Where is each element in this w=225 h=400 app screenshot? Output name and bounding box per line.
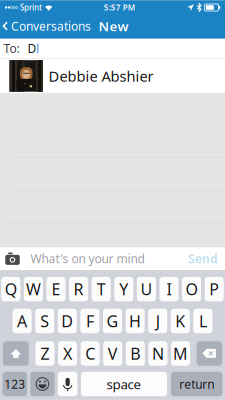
staticText: K [175,310,185,332]
staticText: M [173,343,188,364]
staticText: return [179,376,214,392]
staticText: Q [5,278,17,300]
button[interactable]: A [13,309,32,333]
button[interactable]: H [126,309,145,333]
staticText: U [140,278,152,300]
button[interactable]: S [35,309,54,333]
button[interactable]: Dictation [58,372,77,396]
staticText: N [152,343,164,364]
staticText: Send [188,251,218,267]
staticText: S [40,310,49,332]
button[interactable]: Camera [1,252,24,266]
staticText: 123 [4,376,25,392]
staticText: space [106,375,141,393]
staticText: Conversations [11,18,91,34]
staticText: P [209,278,219,300]
staticText: B [130,343,140,364]
button[interactable]: P [205,277,224,301]
button[interactable]: R [69,277,88,301]
staticText: C [85,343,95,364]
button[interactable]: Delete [197,341,222,366]
staticText: G [106,310,118,332]
staticText: I [166,278,171,300]
button[interactable]: Conversations [0,14,95,38]
staticText: E [51,278,60,300]
button[interactable]: Debbie Abshier [0,59,225,94]
button[interactable]: J [148,309,167,333]
staticText: L [199,310,207,332]
staticText: Sprint [20,2,42,13]
button[interactable]: B [126,341,145,366]
staticText: R [74,278,84,300]
button[interactable]: N [148,341,167,366]
staticText: 5:57 PM [104,2,135,13]
staticText: A [17,310,27,332]
button[interactable]: W [24,277,43,301]
staticText: O [186,278,198,300]
button[interactable]: 123 [3,372,27,396]
button[interactable]: G [103,309,122,333]
staticText: F [86,310,94,332]
button[interactable]: Y [114,277,133,301]
staticText: What's on your mind [30,251,144,267]
staticText: Debbie Abshier [48,66,153,86]
button[interactable]: M [171,341,190,366]
button[interactable]: L [193,309,212,333]
button[interactable]: Q [1,277,20,301]
staticText: X [63,343,72,364]
staticText: J [156,310,160,332]
button[interactable]: Shift [3,341,29,366]
staticText: H [129,310,141,332]
button[interactable]: space [81,372,167,396]
button[interactable]: I [159,277,178,301]
button[interactable]: O [182,277,201,301]
button[interactable]: return [171,372,222,396]
button[interactable]: D [58,309,77,333]
staticText: Z [40,343,49,364]
staticText: T [97,278,106,300]
button[interactable]: T [92,277,111,301]
button[interactable]: Emoji [30,372,55,396]
button[interactable]: Send [180,251,225,267]
button[interactable]: X [58,341,77,366]
staticText: W [26,278,41,300]
staticText: New [99,17,129,35]
button[interactable]: U [137,277,156,301]
staticText: D [61,310,73,332]
staticText: Y [119,278,128,300]
button[interactable]: C [81,341,100,366]
button[interactable]: F [80,309,99,333]
button[interactable]: Z [35,341,54,366]
button[interactable]: E [46,277,65,301]
button[interactable]: K [171,309,190,333]
button[interactable]: V [103,341,122,366]
staticText: To: [3,40,19,56]
staticText: D [27,40,36,56]
staticText: V [108,343,118,364]
